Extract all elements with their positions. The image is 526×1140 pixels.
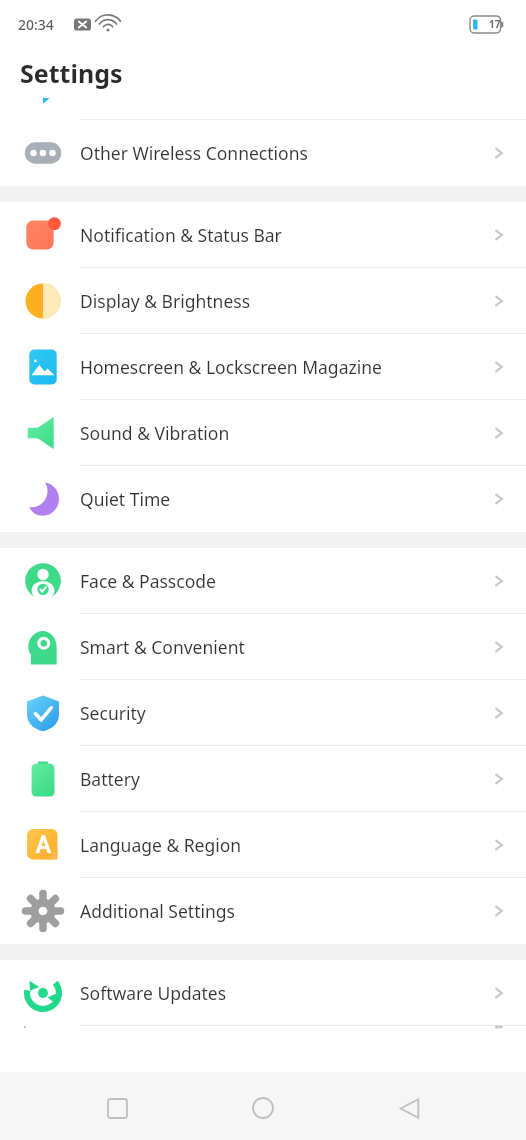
button[interactable]: Additional Settings [0,878,526,944]
button[interactable]: Recent apps [88,1079,146,1137]
button[interactable]: Notification & Status Bar [0,202,526,268]
button[interactable]: Other Wireless Connections [0,120,526,186]
button[interactable]: Homescreen & Lockscreen Magazine [0,334,526,400]
staticText: 17 [489,17,501,31]
staticText: Language & Region [80,833,242,857]
button[interactable]: Language & Region [0,812,526,878]
button[interactable]: Face & Passcode [0,548,526,614]
button[interactable]: Bluetooth [0,98,526,120]
staticText: Homescreen & Lockscreen Magazine [80,355,382,379]
staticText: Display & Brightness [80,289,251,313]
staticText: Software Updates [80,981,227,1005]
staticText: 20:34 [18,15,54,34]
button[interactable]: Display & Brightness [0,268,526,334]
button[interactable]: Back [380,1079,438,1137]
staticText: Face & Passcode [80,569,216,593]
button[interactable]: Home [234,1079,292,1137]
staticText: Quiet Time [80,487,171,511]
button[interactable]: Software Updates [0,960,526,1026]
staticText: Notification & Status Bar [80,223,282,247]
staticText: Sound & Vibration [80,421,230,445]
button[interactable]: Sound & Vibration [0,400,526,466]
staticText: Settings [20,56,123,90]
staticText: Battery [80,767,140,791]
staticText: Smart & Convenient [80,635,245,659]
staticText: Additional Settings [80,899,235,923]
button[interactable]: About Phone [0,1026,526,1028]
button[interactable]: Battery [0,746,526,812]
button[interactable]: Smart & Convenient [0,614,526,680]
staticText: Security [80,701,146,725]
button[interactable]: Quiet Time [0,466,526,532]
button[interactable]: Security [0,680,526,746]
staticText: Other Wireless Connections [80,141,308,165]
